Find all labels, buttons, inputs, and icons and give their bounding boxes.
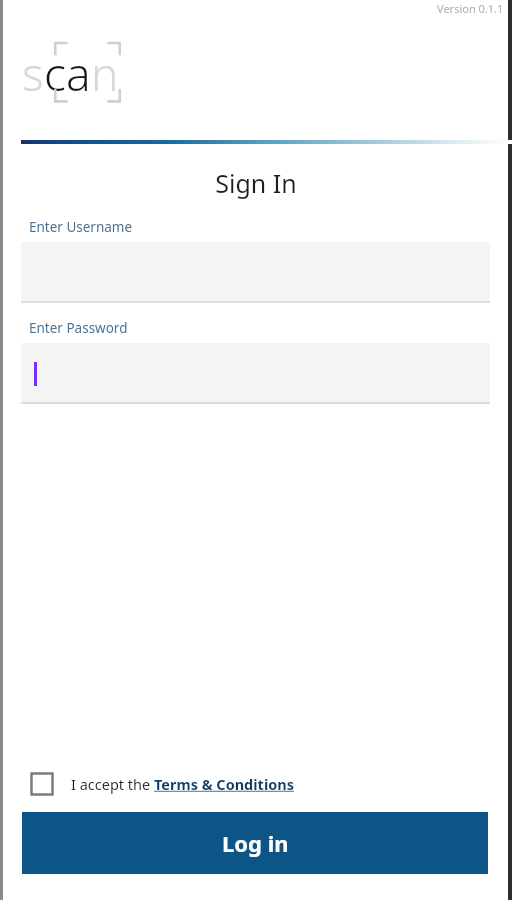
- button[interactable]: [21, 242, 490, 303]
- button[interactable]: Log in: [22, 812, 488, 874]
- staticText: Enter Username: [29, 218, 133, 236]
- staticText: s: [22, 42, 44, 105]
- staticText: Log in: [222, 828, 289, 858]
- button[interactable]: I accept the: [28, 766, 297, 802]
- button[interactable]: [21, 343, 490, 404]
- staticText: Enter Password: [29, 319, 128, 337]
- button[interactable]: Terms & Conditions: [154, 774, 295, 794]
- staticText: ca: [44, 42, 91, 105]
- staticText: I accept the: [71, 774, 154, 794]
- staticText: n: [91, 42, 119, 105]
- staticText: Version 0.1.1: [437, 1, 504, 16]
- staticText: Sign In: [0, 166, 512, 200]
